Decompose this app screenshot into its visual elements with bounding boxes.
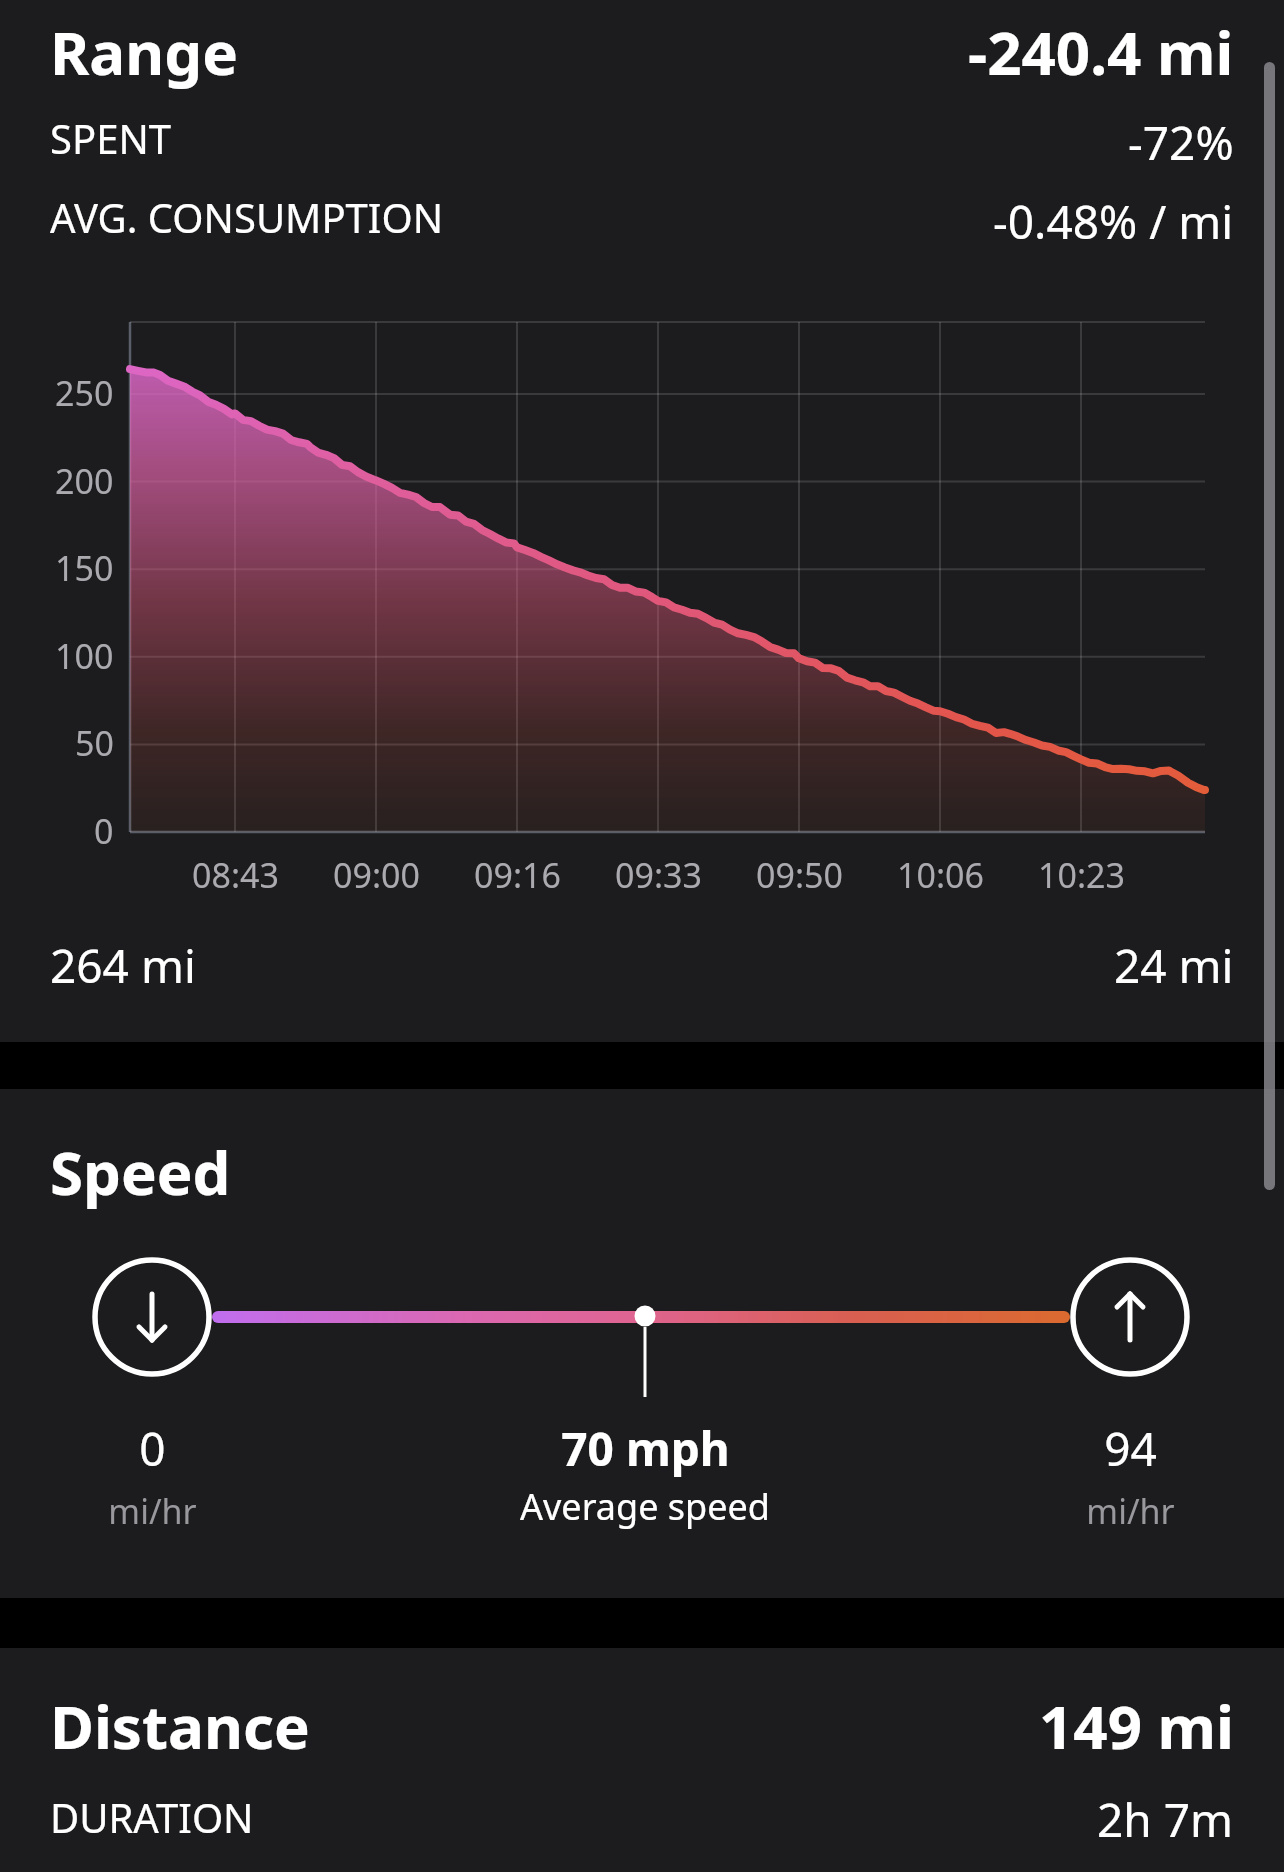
staticText: 0	[94, 808, 114, 854]
staticText: 150	[55, 545, 114, 591]
staticText: 250	[55, 370, 114, 416]
staticText: 09:00	[333, 852, 420, 898]
staticText: mi/hr	[1086, 1488, 1175, 1534]
staticText: 94	[1104, 1417, 1157, 1480]
staticText: AVG. CONSUMPTION	[50, 190, 444, 244]
staticText: 09:50	[756, 852, 843, 898]
staticText: mi/hr	[108, 1488, 197, 1534]
staticText: 2h 7m	[1097, 1788, 1234, 1851]
staticText: DURATION	[50, 1790, 254, 1844]
staticText: 09:16	[474, 852, 561, 898]
staticText: 100	[55, 633, 114, 679]
staticText: 149 mi	[1039, 1685, 1234, 1767]
staticText: 08:43	[192, 852, 279, 898]
staticText: SPENT	[50, 111, 172, 165]
staticText: 0	[139, 1417, 166, 1480]
staticText: 10:06	[897, 852, 984, 898]
staticText: 09:33	[615, 852, 702, 898]
button[interactable]	[95, 1260, 210, 1375]
staticText: Distance	[50, 1685, 310, 1767]
staticText: -0.48% / mi	[993, 190, 1234, 253]
staticText: Range	[50, 11, 239, 93]
staticText: 70 mph	[561, 1417, 730, 1480]
staticText: 10:23	[1038, 852, 1125, 898]
staticText: 24 mi	[1114, 934, 1234, 997]
staticText: Average speed	[520, 1482, 770, 1531]
staticText: 264 mi	[50, 934, 196, 997]
staticText: -240.4 mi	[968, 11, 1234, 93]
staticText: 50	[75, 720, 114, 766]
staticText: Speed	[50, 1131, 231, 1213]
staticText: 200	[55, 458, 114, 504]
button[interactable]	[1073, 1260, 1188, 1375]
staticText: -72%	[1128, 111, 1234, 174]
